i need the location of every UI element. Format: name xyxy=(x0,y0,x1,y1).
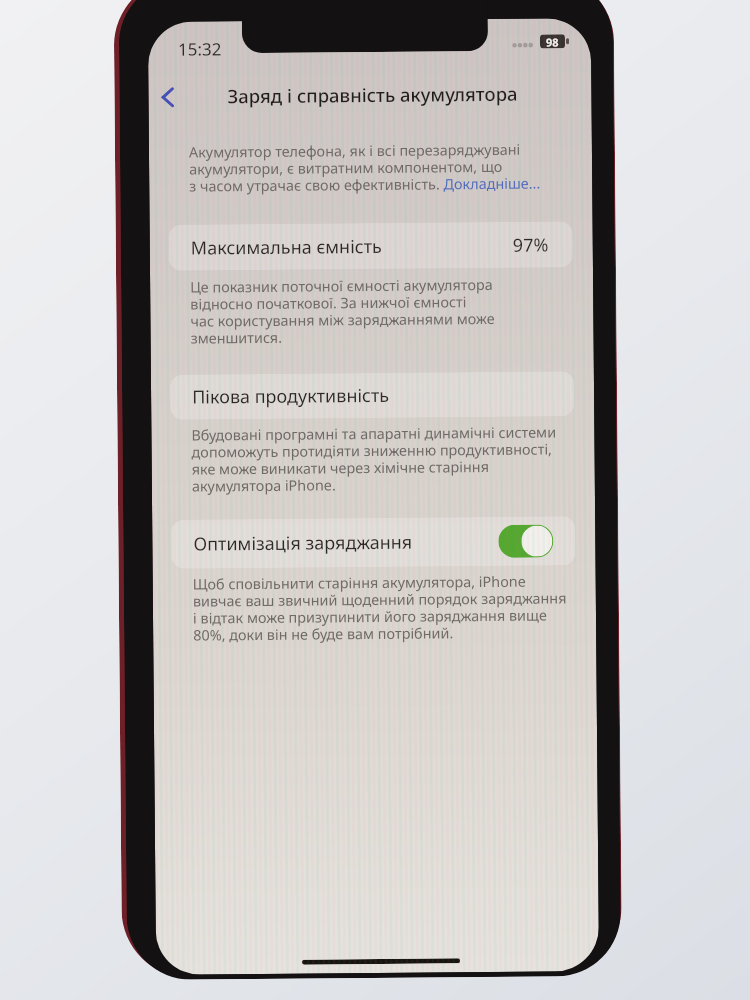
button[interactable]: Пікова продуктивність xyxy=(170,371,574,420)
staticText: Це показник поточної ємності акумулятора… xyxy=(190,277,496,348)
button[interactable]: Optimised charging toggle xyxy=(498,524,553,558)
staticText: Вбудовані програмні та апаратні динамічн… xyxy=(191,424,557,496)
staticText: Акумулятор телефона, як і всі перезарядж… xyxy=(189,141,541,196)
staticText: Заряд і справність акумулятора xyxy=(227,81,519,108)
button[interactable]: Оптимізація заряджання xyxy=(171,516,576,569)
staticText: 15:32 xyxy=(178,37,222,61)
staticText: Максимальна ємність xyxy=(191,234,382,261)
staticText: Оптимізація заряджання xyxy=(193,530,412,557)
staticText: Щоб сповільнити старіння акумулятора, iP… xyxy=(193,573,567,645)
staticText: 97% xyxy=(513,232,549,258)
button[interactable]: Максимальна ємність xyxy=(169,221,573,271)
staticText: Пікова продуктивність xyxy=(192,383,390,410)
button[interactable]: Back xyxy=(149,79,186,115)
staticText: 98 xyxy=(546,34,559,48)
